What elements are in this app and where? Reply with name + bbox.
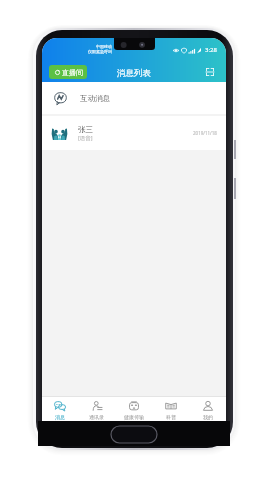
staticText: 张三 xyxy=(78,125,93,134)
staticText: 直播间 xyxy=(62,68,83,77)
button[interactable]: 健康传输 xyxy=(115,397,152,421)
staticText: 通讯录 xyxy=(89,414,104,420)
staticText: 3:28 xyxy=(205,46,217,54)
staticText: [语音] xyxy=(78,134,93,142)
staticText: 科普 xyxy=(166,414,176,420)
button[interactable]: 互动消息 xyxy=(42,82,226,114)
staticText: 消息 xyxy=(55,414,65,420)
staticText: 我的 xyxy=(203,414,213,420)
staticText: 消息列表 xyxy=(117,68,151,79)
staticText: 中国移动 xyxy=(96,44,112,49)
button[interactable]: Scan QR code xyxy=(202,64,218,80)
button[interactable]: 张三 xyxy=(42,116,226,150)
button[interactable]: 通讯录 xyxy=(78,397,115,421)
button[interactable]: 我的 xyxy=(189,397,226,421)
button[interactable]: 科普 xyxy=(152,397,189,421)
button[interactable]: 直播间 xyxy=(49,65,87,79)
staticText: 健康传输 xyxy=(124,414,144,420)
staticText: 仅限紧急呼叫 xyxy=(88,49,112,54)
staticText: 互动消息 xyxy=(80,94,110,103)
button[interactable]: 消息 xyxy=(42,397,78,421)
staticText: 2019/11/18 xyxy=(193,130,217,136)
